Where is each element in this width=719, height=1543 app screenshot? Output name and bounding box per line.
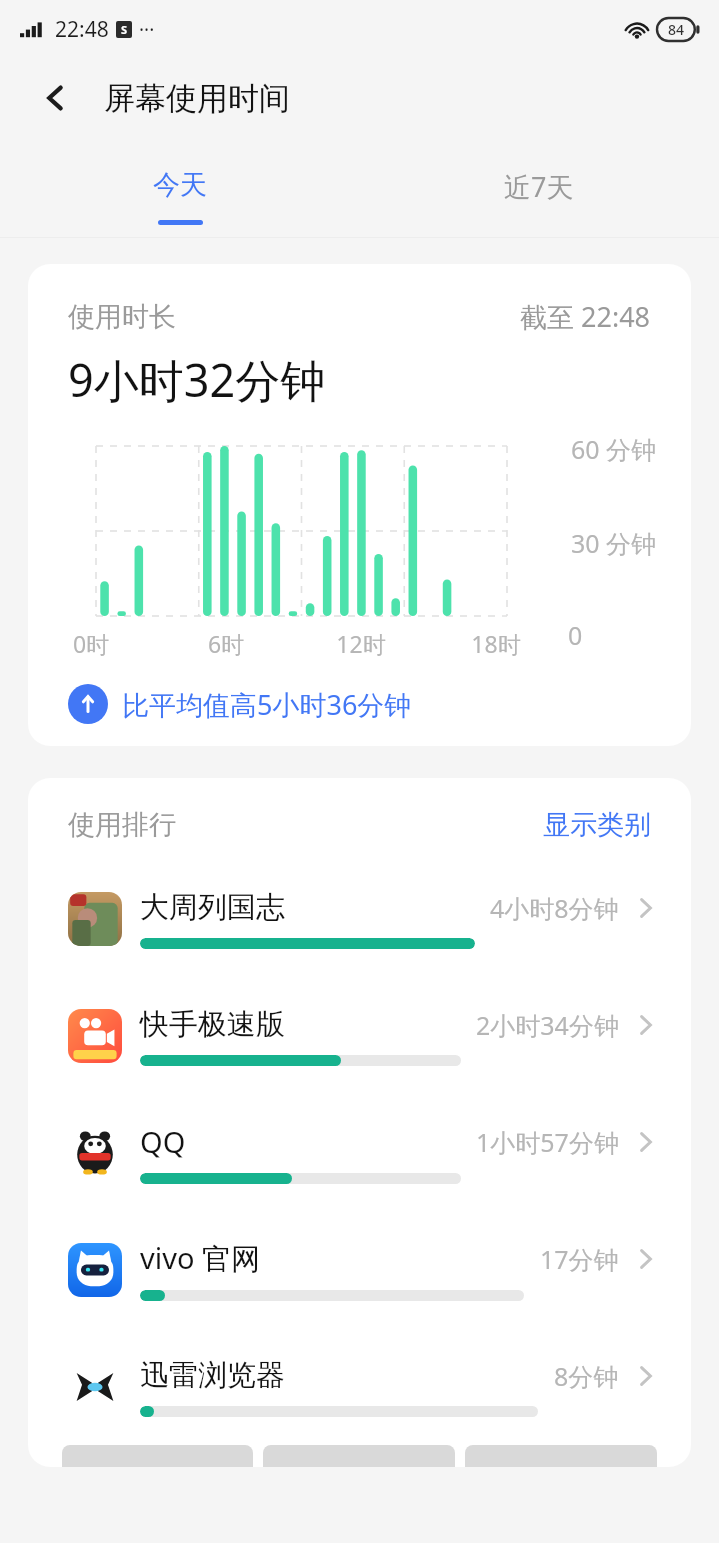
staticText: 1小时57分钟 [476,1125,619,1159]
staticText: S [121,22,128,37]
button[interactable]: 今天 [0,138,359,238]
staticText: 近7天 [504,168,574,205]
button[interactable]: 比平均值高5小时36分钟 [68,684,691,724]
staticText: 截至 22:48 [520,298,651,335]
staticText: 屏幕使用时间 [104,79,290,118]
staticText: 快手极速版 [140,1006,285,1043]
staticText: 17分钟 [540,1242,619,1276]
staticText: QQ [140,1122,186,1161]
staticText: 使用排行 [68,808,176,842]
button[interactable]: vivo 官网 [28,1211,691,1328]
staticText: 0 [568,618,583,652]
staticText: 9小时32分钟 [68,349,326,410]
staticText: 0时 [61,628,121,659]
button[interactable]: QQ [28,1094,691,1211]
staticText: 今天 [153,168,207,202]
staticText: vivo 官网 [140,1238,261,1278]
staticText: 迅雷浏览器 [140,1357,285,1394]
button[interactable]: 返回 [30,72,82,124]
staticText: 2小时34分钟 [476,1008,619,1042]
staticText: 4小时8分钟 [490,891,619,925]
staticText: 8分钟 [554,1359,619,1393]
staticText: 60 分钟 [571,432,657,466]
button[interactable]: 快手极速版 [28,977,691,1094]
staticText: 12时 [331,628,391,659]
button[interactable]: 显示类别 [543,808,651,842]
staticText: 使用时长 [68,300,176,334]
staticText: 22:48 [55,15,109,44]
button[interactable]: 大周列国志 [28,860,691,977]
staticText: 84 [668,20,685,39]
staticText: ··· [139,17,155,43]
button[interactable]: 迅雷浏览器 [28,1328,691,1445]
button[interactable]: 近7天 [359,138,719,238]
staticText: 比平均值高5小时36分钟 [122,686,412,723]
staticText: 大周列国志 [140,889,285,926]
staticText: 显示类别 [543,808,651,842]
staticText: 30 分钟 [571,526,657,560]
staticText: 18时 [466,628,526,659]
staticText: 6时 [196,628,256,659]
